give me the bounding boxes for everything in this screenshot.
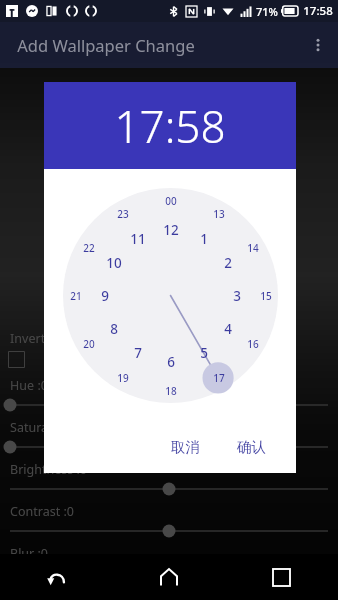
staticText: 1	[200, 230, 208, 248]
staticText: 16	[247, 337, 259, 351]
staticText: 10	[106, 254, 122, 272]
staticText: Add Wallpaper Change	[17, 34, 195, 56]
button[interactable]: 18	[159, 379, 183, 403]
button[interactable]: Home	[112, 554, 225, 600]
button[interactable]: Back	[0, 554, 112, 600]
staticText: 12	[163, 221, 179, 239]
staticText: 11	[130, 230, 146, 248]
button[interactable]: More options	[298, 22, 338, 68]
button[interactable]: Recents	[225, 554, 338, 600]
button[interactable]: 17	[207, 366, 231, 390]
staticText: 17	[213, 371, 225, 385]
button[interactable]: 12	[159, 218, 183, 242]
staticText: 15	[260, 289, 272, 303]
button[interactable]: 6	[159, 350, 183, 374]
button[interactable]	[8, 524, 330, 538]
staticText: 6	[167, 353, 175, 371]
button[interactable]	[8, 398, 330, 412]
staticText: 5	[200, 344, 208, 362]
staticText: Saturation :0	[10, 419, 85, 436]
staticText: 17:58	[114, 96, 226, 156]
staticText: Invert colors	[10, 330, 84, 347]
staticText: 取消	[171, 438, 200, 456]
button[interactable]: 4	[216, 317, 240, 341]
staticText: 71%	[256, 4, 278, 19]
button[interactable]: 22	[77, 236, 101, 260]
staticText: Contrast :0	[10, 503, 74, 520]
button[interactable]: 3	[225, 284, 249, 308]
staticText: 3	[233, 287, 241, 305]
staticText: 9	[101, 287, 109, 305]
staticText: Blur :0	[10, 545, 48, 562]
staticText: 22	[83, 241, 95, 255]
button[interactable]: 15	[254, 284, 278, 308]
button[interactable]: 17:58	[44, 82, 296, 169]
button[interactable]: 8	[102, 317, 126, 341]
staticText: 确认	[237, 438, 266, 456]
button[interactable]: 13	[207, 202, 231, 226]
staticText: 23	[117, 207, 129, 221]
staticText: 2	[224, 254, 232, 272]
button[interactable]	[8, 482, 330, 496]
button[interactable]: 2	[216, 251, 240, 275]
button[interactable]: 19	[111, 366, 135, 390]
staticText: 13	[213, 207, 225, 221]
button[interactable]	[8, 566, 330, 580]
button[interactable]: 11	[126, 227, 150, 251]
button[interactable]: 10	[102, 251, 126, 275]
button[interactable]: 确认	[223, 425, 279, 469]
staticText: 18	[165, 384, 177, 398]
button[interactable]: 取消	[157, 425, 213, 469]
button[interactable]: 1	[192, 227, 216, 251]
staticText: 17:58	[303, 3, 333, 19]
button[interactable]: 00	[159, 189, 183, 213]
button[interactable]: 5	[192, 341, 216, 365]
staticText: Brightness :0	[10, 461, 87, 478]
button[interactable]: 20	[77, 332, 101, 356]
button[interactable]: 21	[64, 284, 88, 308]
staticText: 20	[83, 337, 95, 351]
staticText: Hue :0	[10, 377, 48, 394]
staticText: 19	[117, 371, 129, 385]
staticText: 7	[134, 344, 142, 362]
button[interactable]	[8, 440, 330, 454]
button[interactable]: 9	[93, 284, 117, 308]
staticText: 4	[224, 320, 232, 338]
staticText: 14	[247, 241, 259, 255]
button[interactable]: 23	[111, 202, 135, 226]
staticText: 8	[110, 320, 118, 338]
button[interactable]: 14	[241, 236, 265, 260]
button[interactable]: Invert colors checkbox	[8, 351, 25, 368]
button[interactable]: 16	[241, 332, 265, 356]
staticText: 21	[70, 289, 82, 303]
button[interactable]: 7	[126, 341, 150, 365]
staticText: 00	[165, 194, 177, 208]
